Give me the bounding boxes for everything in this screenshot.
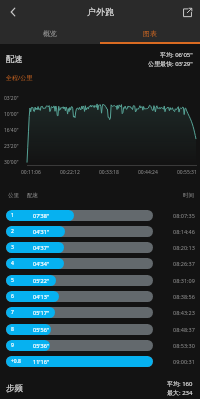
staticText: 30'00" xyxy=(4,159,19,166)
button[interactable]: 5 xyxy=(6,275,195,286)
staticText: 05'17" xyxy=(33,309,50,316)
button[interactable]: 图表 xyxy=(100,23,200,44)
staticText: 00:44:24 xyxy=(138,169,158,176)
staticText: 03'20" xyxy=(4,95,19,102)
button[interactable]: 8 xyxy=(6,324,195,335)
staticText: 07'38" xyxy=(33,212,50,219)
staticText: 1 xyxy=(11,212,14,219)
button[interactable]: 2 xyxy=(6,226,195,237)
staticText: 8 xyxy=(11,326,14,333)
staticText: 9 xyxy=(11,342,14,349)
staticText: 05'36" xyxy=(33,342,50,349)
staticText: 04'31" xyxy=(33,228,50,235)
staticText: 08:14:46 xyxy=(173,228,195,235)
staticText: 23'20" xyxy=(4,143,19,150)
staticText: 04'34" xyxy=(33,260,50,267)
staticText: 16'40" xyxy=(4,127,19,134)
button[interactable]: +0.8 xyxy=(6,356,195,367)
button[interactable]: 7 xyxy=(6,307,195,318)
staticText: 6 xyxy=(11,293,14,300)
staticText: 概览 xyxy=(43,29,57,38)
staticText: 00:55:31 xyxy=(177,169,197,176)
button[interactable]: 4 xyxy=(6,258,195,269)
staticText: 08:31:09 xyxy=(173,277,195,284)
staticText: 2 xyxy=(11,228,14,235)
staticText: 4 xyxy=(11,260,14,267)
staticText: 08:07:35 xyxy=(173,212,195,219)
staticText: 08:20:13 xyxy=(173,244,195,251)
staticText: +0.8 xyxy=(11,358,21,365)
staticText: 全程/公里 xyxy=(6,74,33,82)
staticText: 09:00:31 xyxy=(173,358,195,365)
staticText: 7 xyxy=(11,309,14,316)
staticText: 05'56" xyxy=(33,326,50,333)
staticText: 5 xyxy=(11,277,14,284)
staticText: 04'37" xyxy=(33,244,50,251)
staticText: 08:53:30 xyxy=(173,342,195,349)
staticText: 04'13" xyxy=(33,293,50,300)
staticText: 公里 xyxy=(8,192,19,199)
staticText: 时间 xyxy=(183,192,194,199)
staticText: 配速 xyxy=(27,192,38,199)
staticText: 08:48:37 xyxy=(173,326,195,333)
staticText: 11'16" xyxy=(33,358,50,365)
button[interactable]: 9 xyxy=(6,340,195,351)
staticText: 08:38:56 xyxy=(173,293,195,300)
staticText: 00:22:12 xyxy=(60,169,80,176)
button[interactable]: 6 xyxy=(6,291,195,302)
staticText: 配速 xyxy=(6,54,23,65)
staticText: 图表 xyxy=(143,29,157,38)
staticText: 公里最快: 03'29" xyxy=(148,60,193,68)
staticText: 最大: 234 xyxy=(167,389,193,397)
staticText: 平均: 160 xyxy=(167,380,193,388)
button[interactable]: 全程/公里 xyxy=(6,74,33,82)
button[interactable]: 概览 xyxy=(0,23,100,44)
button[interactable]: 3 xyxy=(6,242,195,253)
staticText: 步频 xyxy=(6,383,23,394)
staticText: 00:33:18 xyxy=(99,169,119,176)
staticText: 10'00" xyxy=(4,111,19,118)
button[interactable]: 1 xyxy=(6,210,195,221)
staticText: 00:11:06 xyxy=(21,169,41,176)
staticText: 08:43:23 xyxy=(173,309,195,316)
staticText: 08:26:37 xyxy=(173,260,195,267)
staticText: 3 xyxy=(11,244,14,251)
staticText: 户外跑 xyxy=(87,6,114,17)
button[interactable]: Share xyxy=(179,4,195,20)
staticText: 平均: 06'05" xyxy=(160,51,193,59)
button[interactable]: Back xyxy=(5,4,21,20)
staticText: 05'22" xyxy=(33,277,50,284)
